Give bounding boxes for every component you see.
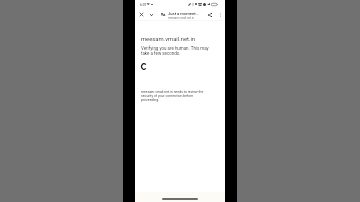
button[interactable]: Collapse bbox=[147, 9, 156, 20]
button[interactable]: More options bbox=[216, 9, 225, 20]
staticText: meesam.vmail.net.in bbox=[141, 36, 196, 43]
button[interactable]: Share bbox=[205, 9, 214, 20]
button[interactable]: Close bbox=[137, 9, 146, 20]
button[interactable]: Translate page bbox=[158, 9, 167, 20]
staticText: Verifying you are human. This may take a… bbox=[141, 46, 212, 56]
staticText: 6:07 bbox=[140, 3, 147, 7]
staticText: meesam.vmail.net.in bbox=[168, 16, 194, 19]
staticText: 5 bbox=[192, 3, 194, 7]
staticText: Just a moment... bbox=[168, 11, 199, 16]
staticText: meesam.vmail.net.in needs to review the … bbox=[141, 90, 204, 102]
